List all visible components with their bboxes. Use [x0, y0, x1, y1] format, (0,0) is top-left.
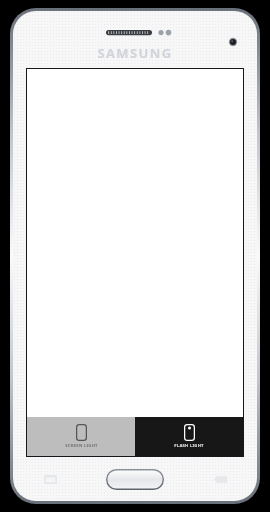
- button[interactable]: Back: [210, 471, 230, 487]
- staticText: SCREEN LIGHT: [65, 443, 98, 449]
- staticText: SAMSUNG: [97, 44, 173, 62]
- button[interactable]: Home: [106, 469, 164, 490]
- staticText: FLASH LIGHT: [174, 443, 204, 449]
- button[interactable]: Recent apps: [40, 471, 60, 487]
- button[interactable]: SCREEN LIGHT: [27, 417, 135, 456]
- button[interactable]: FLASH LIGHT: [135, 417, 243, 456]
